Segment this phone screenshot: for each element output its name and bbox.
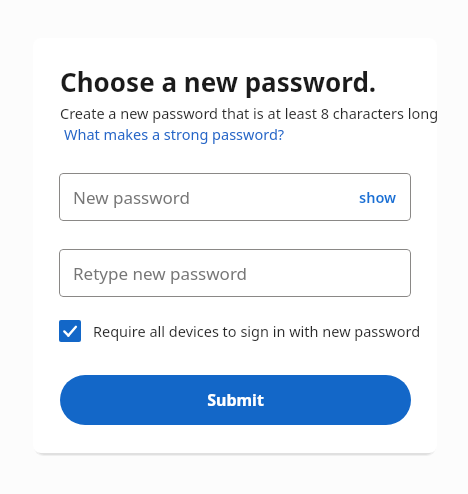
staticText: Require all devices to sign in with new … xyxy=(93,321,421,341)
button[interactable]: Retype new password xyxy=(59,249,411,297)
staticText: Create a new password that is at least 8… xyxy=(60,103,437,123)
button[interactable]: show xyxy=(347,173,409,221)
staticText: New password xyxy=(73,186,191,209)
button[interactable]: Submit xyxy=(60,375,411,425)
button[interactable]: Require all devices to sign in with new … xyxy=(59,316,421,346)
button[interactable]: New password xyxy=(59,173,411,221)
staticText: show xyxy=(359,187,397,207)
staticText: Retype new password xyxy=(73,262,248,285)
button[interactable]: What makes a strong password? xyxy=(64,124,285,144)
staticText: Submit xyxy=(207,389,264,411)
staticText: Choose a new password. xyxy=(60,64,377,99)
staticText: What makes a strong password? xyxy=(64,124,285,144)
